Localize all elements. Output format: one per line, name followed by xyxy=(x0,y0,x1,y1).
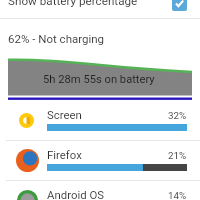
button[interactable]: Show battery percentage xyxy=(0,0,200,18)
staticText: 62% - Not charging xyxy=(8,32,105,45)
staticText: 21% xyxy=(168,150,187,161)
staticText: Show battery percentage xyxy=(8,0,138,8)
staticText: Firefox xyxy=(47,148,82,161)
button[interactable]: Firefox xyxy=(0,140,200,180)
staticText: Screen xyxy=(47,108,82,121)
staticText: 5h 28m 55s on battery xyxy=(43,73,155,86)
staticText: 32% xyxy=(168,110,187,121)
button[interactable]: Android OS xyxy=(0,180,200,200)
other: Show battery percentage checkbox xyxy=(172,0,187,11)
staticText: Android OS xyxy=(47,188,105,200)
button[interactable]: Screen xyxy=(0,100,200,140)
staticText: 14% xyxy=(168,190,187,200)
